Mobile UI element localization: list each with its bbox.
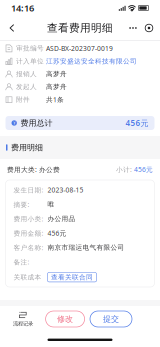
button[interactable]: 提交 [90, 311, 132, 327]
button[interactable]: 查看关联合同 [47, 272, 96, 282]
staticText: 报销人 [16, 70, 37, 78]
staticText: 查看费用明细 [47, 21, 113, 34]
staticText: ASD-BX-202307-0019 [46, 44, 113, 53]
staticText: 发生日期: [13, 186, 43, 194]
staticText: 费用金额: [13, 229, 43, 238]
staticText: 办公用品 [47, 215, 75, 223]
staticText: 共1条 [46, 95, 64, 104]
button[interactable]: Close [141, 20, 157, 36]
staticText: 查看关联合同 [51, 273, 93, 281]
staticText: 456元 [47, 229, 66, 238]
staticText: 高梦舟 [46, 83, 67, 91]
staticText: ¥ [13, 120, 15, 126]
staticText: 费用小类: [13, 214, 43, 223]
staticText: 备注: [13, 258, 29, 266]
staticText: 高梦舟 [46, 70, 67, 78]
staticText: 唯 [47, 200, 54, 208]
staticText: 南京市瑞运电气有限公司 [47, 243, 124, 252]
staticText: 456元 [134, 165, 153, 174]
staticText: 江苏安盛达安全科技有限公司 [46, 57, 137, 65]
staticText: 2023-08-15 [47, 186, 83, 194]
staticText: 修改 [57, 314, 73, 324]
staticText: 456元 [125, 118, 148, 128]
button[interactable]: 修改 [46, 311, 85, 327]
staticText: 小计: [116, 165, 134, 174]
staticText: 审批编号 [16, 44, 44, 52]
staticText: 费用明细 [11, 143, 43, 152]
staticText: 摘要: [13, 200, 29, 209]
staticText: 客户名称: [13, 243, 43, 252]
staticText: 附件 [16, 95, 30, 104]
staticText: 发起人 [16, 83, 37, 91]
staticText: 费用总计 [20, 118, 52, 128]
staticText: 流程记录 [13, 320, 33, 327]
staticText: 费用大类: 办公费 [7, 165, 60, 174]
staticText: 关联成本 [13, 273, 41, 281]
staticText: 提交 [103, 314, 119, 324]
button[interactable]: More [125, 20, 141, 36]
button[interactable]: 流程记录 [8, 308, 38, 330]
staticText: 计入单位 [16, 57, 44, 65]
button[interactable]: Back [3, 19, 21, 37]
staticText: 14:16 [11, 2, 34, 14]
